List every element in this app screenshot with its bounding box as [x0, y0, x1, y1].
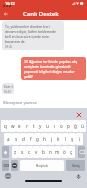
button[interactable]: ö [61, 146, 68, 158]
button[interactable]: ı [51, 120, 58, 132]
button[interactable]: Emoji [4, 172, 12, 180]
button[interactable]: Tü, yüklemeleri dünden beri devam ediyor… [2, 21, 64, 50]
staticText: r [26, 123, 28, 129]
staticText: Evet :) [4, 85, 13, 89]
staticText: Tü, yüklemeleri dünden beri devam ediyor… [5, 24, 61, 44]
staticText: z [14, 149, 17, 155]
staticText: h [43, 136, 46, 142]
button[interactable]: Voice input [74, 172, 82, 180]
button[interactable]: p [65, 120, 72, 132]
staticText: n [49, 149, 52, 155]
staticText: 09:49 [4, 90, 11, 94]
button[interactable]: j [48, 133, 55, 145]
staticText: v [35, 149, 38, 155]
button[interactable]: ç [68, 146, 75, 158]
staticText: Canlı Destek [23, 10, 59, 18]
staticText: d [22, 136, 25, 142]
button[interactable]: Back [0, 8, 12, 20]
staticText: e [18, 123, 21, 129]
staticText: ç [70, 149, 73, 155]
button[interactable]: ş [69, 133, 76, 145]
staticText: y [39, 123, 42, 129]
staticText: c [28, 149, 31, 155]
button[interactable]: x [19, 146, 26, 158]
button[interactable]: v [33, 146, 40, 158]
button[interactable]: s [12, 133, 20, 145]
button[interactable]: d [20, 133, 27, 145]
button[interactable]: r [23, 120, 30, 132]
staticText: ğ [74, 123, 77, 129]
staticText: k [57, 136, 60, 142]
button[interactable]: n [47, 146, 54, 158]
button[interactable]: h [41, 133, 48, 145]
button[interactable]: emoji [11, 160, 18, 171]
button[interactable]: ü [79, 120, 86, 132]
staticText: b [42, 149, 45, 155]
staticText: t [33, 123, 35, 129]
button[interactable]: b [40, 146, 47, 158]
button[interactable]: w [9, 120, 16, 132]
button[interactable]: t [30, 120, 37, 132]
staticText: q [4, 123, 7, 129]
button[interactable]: g [34, 133, 41, 145]
button[interactable]: c [26, 146, 33, 158]
staticText: l [65, 136, 67, 142]
staticText: Mesajınızı yazınız [3, 100, 37, 106]
button[interactable]: l [62, 133, 69, 145]
button[interactable]: m [54, 146, 61, 158]
button[interactable]: 123 [2, 160, 9, 171]
staticText: i [79, 136, 81, 142]
button[interactable]: i [76, 133, 83, 145]
staticText: m [55, 149, 60, 155]
button[interactable]: shift [2, 146, 9, 158]
button[interactable]: k [55, 133, 62, 145]
button[interactable]: Close keyboard [74, 110, 83, 119]
button[interactable]: z [12, 146, 19, 158]
staticText: u [46, 123, 49, 129]
staticText: 20 Ağustos tarihinde yapılan alış verişl… [24, 59, 83, 79]
button[interactable]: Giriş [66, 160, 85, 171]
button[interactable]: a [4, 133, 12, 145]
button[interactable]: ğ [72, 120, 79, 132]
staticText: a [7, 136, 10, 142]
button[interactable]: 20 Ağustos tarihinde yapılan alış verişl… [21, 57, 86, 80]
button[interactable]: o [58, 120, 65, 132]
staticText: 123 [3, 163, 9, 168]
staticText: ı [54, 123, 56, 129]
staticText: s [15, 136, 18, 142]
staticText: ö [63, 149, 66, 155]
staticText: w [11, 123, 15, 129]
staticText: Boşluk [36, 163, 48, 168]
staticText: o [60, 123, 63, 129]
staticText: 16:12 [5, 1, 15, 6]
button[interactable]: f [27, 133, 34, 145]
button[interactable]: backspace [78, 146, 85, 158]
button[interactable]: Boşluk [20, 160, 64, 171]
staticText: f [30, 136, 32, 142]
staticText: p [67, 123, 70, 129]
staticText: j [51, 136, 53, 142]
button[interactable]: Evet :) [2, 83, 14, 94]
staticText: 09:45 [5, 45, 13, 49]
staticText: Giriş [72, 163, 80, 168]
button[interactable]: q [1, 120, 9, 132]
staticText: x [21, 149, 24, 155]
button[interactable]: e [16, 120, 23, 132]
staticText: g [36, 136, 39, 142]
button[interactable]: u [44, 120, 51, 132]
staticText: ü [81, 123, 84, 129]
staticText: ş [71, 136, 74, 142]
button[interactable]: y [37, 120, 44, 132]
